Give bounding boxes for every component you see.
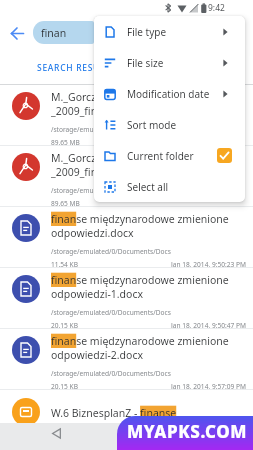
staticText: 11.54 KB [51,260,78,268]
staticText: /storage/emulated/0/Downlo [51,186,142,195]
staticText: Select all [127,180,169,194]
button[interactable]: finanse międzynarodowe zmienione [0,207,253,268]
staticText: Jan 18, 2014, 9:57:09 PM [171,382,246,390]
button[interactable]: Current folder [94,140,245,171]
staticText: odpowiedzi-2.docx [51,348,144,362]
button[interactable] [51,428,62,439]
staticText: /storage/emulated/0/Downlo [51,125,142,134]
staticText: 89.65 MB [51,138,80,146]
staticText: 89.65 MB [51,199,80,207]
staticText: finan [41,26,67,40]
staticText: _2009_finanse_mied [51,165,151,179]
button[interactable]: W.6 BiznesplanZ - finanse [0,390,253,450]
button[interactable]: Modification date [94,78,245,109]
staticText: 20.15 KB [51,382,78,390]
button[interactable]: M._Gorczyńska_fina [0,146,253,207]
staticText: Jan 18, 2014, 9:50:23 PM [171,260,246,268]
staticText: Jan 18, 2014, 9:50:47 PM [171,321,246,329]
staticText: File type [127,25,167,39]
button[interactable]: MYAPKS.COM [117,416,253,450]
staticText: W.6 BiznesplanZ - finanse [51,406,177,420]
staticText: /storage/emulated/0/Documents/Docs [51,369,171,378]
staticText: finanse międzynarodowe zmienione [51,273,229,287]
staticText: SEARCH RESULTS [37,62,116,74]
staticText: 20.15 KB [51,321,78,329]
button[interactable]: File type [94,16,245,47]
staticText: File size [127,56,164,70]
staticText: odpowiedzi-1.docx [51,287,144,301]
staticText: finanse międzynarodowe zmienione [51,334,229,348]
button[interactable]: finanse międzynarodowe zmienione [0,268,253,329]
staticText: M._Gorczyńska_fina [51,90,148,104]
button[interactable] [11,27,24,40]
button[interactable]: M._Gorczyńska_fina [0,85,253,146]
staticText: Sort mode [127,118,177,132]
staticText: M._Gorczyńska_fina [51,151,148,165]
staticText: /storage/emulated/0/Documents/Docs [51,247,171,256]
staticText: Current folder [127,149,194,163]
staticText: _2009_finanse_mied [51,104,151,118]
staticText: 9:42 [208,2,225,14]
staticText: Modification date [127,87,210,101]
button[interactable]: Sort mode [94,109,245,140]
staticText: MYAPKS.COM [127,420,248,443]
staticText: finanse międzynarodowe zmienione [51,212,229,226]
button[interactable]: finan [33,21,94,44]
staticText: odpowiedzi.docx [51,226,134,240]
staticText: /storage/emulated/0/Documents/Docs [51,308,171,317]
button[interactable]: Select all [94,171,245,202]
button[interactable]: finanse międzynarodowe zmienione [0,329,253,390]
button[interactable]: File size [94,47,245,78]
